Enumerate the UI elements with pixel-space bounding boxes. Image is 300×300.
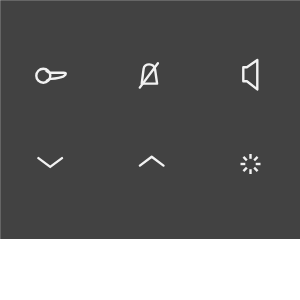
button[interactable]: Volume up xyxy=(102,118,202,204)
button[interactable]: Volume down xyxy=(0,120,100,206)
button[interactable]: Brightness xyxy=(201,121,300,207)
button[interactable]: Notifications off xyxy=(99,32,199,118)
button[interactable]: Volume xyxy=(200,32,300,118)
button[interactable]: Temperature xyxy=(1,33,101,119)
